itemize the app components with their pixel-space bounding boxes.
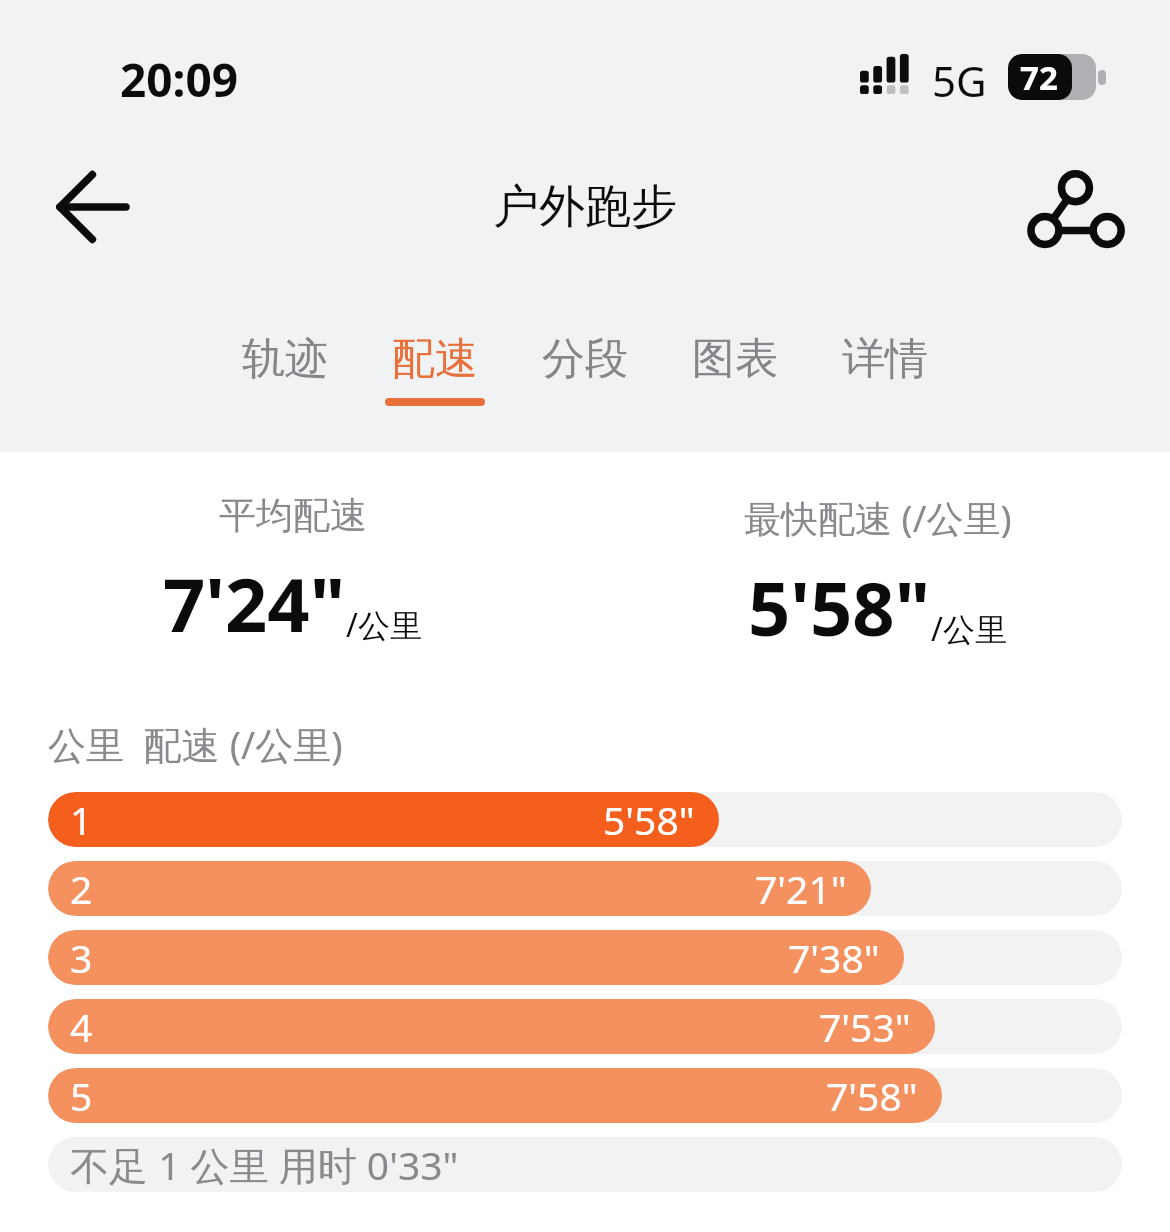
- staticText: 72: [1020, 55, 1058, 100]
- staticText: 5'58": [748, 557, 931, 658]
- button[interactable]: 详情: [810, 332, 960, 406]
- staticText: 7'21": [755, 862, 847, 915]
- staticText: 分段: [542, 332, 628, 386]
- staticText: 3: [70, 931, 93, 984]
- staticText: 平均配速: [219, 492, 367, 539]
- staticText: 配速: [392, 332, 478, 386]
- staticText: 最快配速 (/公里): [744, 492, 1012, 543]
- button[interactable]: Back: [30, 147, 150, 267]
- button[interactable]: 2: [48, 861, 1122, 916]
- staticText: 7'38": [788, 931, 880, 984]
- staticText: 7'53": [819, 1000, 911, 1053]
- button[interactable]: 3: [48, 930, 1122, 985]
- button[interactable]: 配速: [360, 332, 510, 406]
- button[interactable]: Share: [1012, 150, 1134, 272]
- button[interactable]: 轨迹: [210, 332, 360, 406]
- staticText: 轨迹: [242, 332, 328, 386]
- staticText: 户外跑步: [0, 178, 1170, 236]
- staticText: 5: [70, 1069, 93, 1122]
- staticText: /公里: [346, 603, 422, 647]
- button[interactable]: 1: [48, 792, 1122, 847]
- button[interactable]: 分段: [510, 332, 660, 406]
- staticText: 1: [70, 793, 93, 846]
- staticText: 4: [70, 1000, 93, 1053]
- staticText: 7'24": [163, 553, 346, 654]
- staticText: 2: [70, 862, 93, 915]
- button[interactable]: 不足 1 公里 用时 0'33": [48, 1137, 1122, 1192]
- button[interactable]: 图表: [660, 332, 810, 406]
- staticText: 20:09: [120, 48, 239, 111]
- staticText: /公里: [931, 607, 1007, 651]
- staticText: 7'58": [826, 1069, 918, 1122]
- staticText: 详情: [842, 332, 928, 386]
- button[interactable]: 4: [48, 999, 1122, 1054]
- staticText: 5G: [932, 52, 987, 109]
- button[interactable]: 5: [48, 1068, 1122, 1123]
- staticText: 图表: [692, 332, 778, 386]
- staticText: 5'58": [603, 793, 695, 846]
- staticText: 公里 配速 (/公里): [48, 718, 343, 770]
- staticText: 不足 1 公里 用时 0'33": [70, 1138, 459, 1191]
